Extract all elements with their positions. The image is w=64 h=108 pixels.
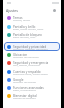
staticText: Seguridad y privacidad [13, 45, 47, 49]
staticText: Tiempo de pantalla [13, 96, 36, 99]
staticText: Cuentas y respaldo [13, 70, 41, 74]
button[interactable]: Search [53, 9, 56, 12]
button[interactable]: Seguridad y privacidad [4, 42, 60, 51]
staticText: Ubicacion [13, 53, 28, 57]
staticText: Ajustes [6, 8, 18, 13]
staticText: Funciones avanzadas [13, 86, 44, 90]
staticText: Pantalla de bloqueo [13, 33, 42, 37]
staticText: Samsung Cloud, Smart Switch [13, 72, 49, 75]
button[interactable]: Bienestar digital [3, 92, 61, 100]
staticText: Temas [13, 16, 23, 20]
staticText: Servicios de Google [13, 80, 36, 83]
staticText: Bienestar digital [13, 94, 37, 98]
staticText: Bixby, movimientos [13, 88, 36, 91]
button[interactable]: Pantalla y brillo [3, 23, 61, 31]
staticText: Permisos, bloqueo, biometria [13, 47, 48, 50]
button[interactable]: Pantalla de bloqueo [3, 31, 61, 39]
staticText: Servicios de ubicacion [13, 55, 39, 58]
button[interactable]: Cuentas y respaldo [3, 68, 61, 76]
staticText: SOS, alertas, contactos [13, 63, 40, 66]
button[interactable]: Google [3, 76, 61, 84]
staticText: Fondos, temas [13, 18, 31, 21]
staticText: Pantalla y brillo [13, 25, 36, 29]
button[interactable]: Temas [3, 14, 61, 22]
staticText: Seguridad y emergencia [13, 61, 49, 65]
staticText: Brillo, modo oscuro, texto [13, 27, 44, 30]
staticText: Google [13, 78, 24, 82]
button[interactable]: Ubicacion [3, 51, 61, 59]
button[interactable]: Funciones avanzadas [3, 84, 61, 92]
staticText: Estilo de reloj, AOD [13, 35, 36, 38]
button[interactable]: Seguridad y emergencia [3, 59, 61, 67]
